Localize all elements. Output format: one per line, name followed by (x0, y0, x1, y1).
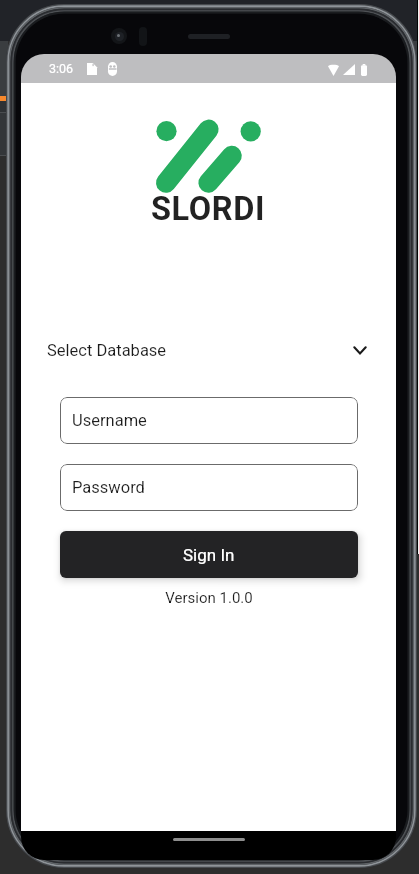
button[interactable]: Password (60, 464, 358, 511)
staticText: SLORDI (151, 190, 266, 228)
button[interactable]: Username (60, 397, 358, 444)
staticText: Username (72, 411, 147, 430)
button[interactable]: Select Database (38, 332, 372, 369)
staticText: Sign In (183, 545, 235, 565)
button[interactable]: Sign In (60, 531, 358, 578)
staticText: Select Database (47, 341, 167, 360)
staticText: 3:06 (49, 61, 74, 76)
staticText: Password (72, 478, 145, 497)
staticText: Version 1.0.0 (165, 589, 253, 607)
